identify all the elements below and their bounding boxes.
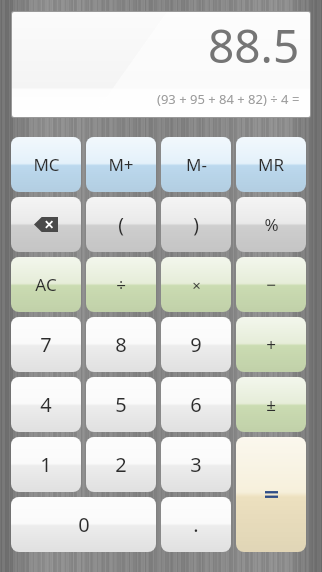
staticText: 7 <box>40 331 52 358</box>
button[interactable]: 7 <box>11 317 81 372</box>
button[interactable]: ÷ <box>86 257 156 312</box>
button[interactable]: 8 <box>86 317 156 372</box>
button[interactable]: M+ <box>86 137 156 192</box>
button[interactable]: MC <box>11 137 81 192</box>
staticText: 2 <box>115 451 127 478</box>
other: Backspace <box>34 217 58 232</box>
button[interactable]: . <box>161 497 231 552</box>
staticText: AC <box>35 273 57 296</box>
staticText: (93 + 95 + 84 + 82) ÷ 4 = <box>157 90 300 108</box>
staticText: 0 <box>78 511 90 538</box>
staticText: 1 <box>40 451 52 478</box>
button[interactable]: 3 <box>161 437 231 492</box>
button[interactable]: AC <box>11 257 81 312</box>
staticText: . <box>193 511 199 538</box>
button[interactable]: ) <box>161 197 231 252</box>
button[interactable]: ( <box>86 197 156 252</box>
staticText: M- <box>186 153 207 176</box>
button[interactable]: 0 <box>11 497 156 552</box>
staticText: M+ <box>108 153 134 176</box>
button[interactable]: ± <box>236 377 306 432</box>
button[interactable]: MR <box>236 137 306 192</box>
staticText: ± <box>266 393 276 416</box>
button[interactable]: M- <box>161 137 231 192</box>
staticText: 5 <box>115 391 127 418</box>
button[interactable]: + <box>236 317 306 372</box>
staticText: 6 <box>190 391 202 418</box>
staticText: − <box>266 273 276 296</box>
staticText: × <box>192 275 201 295</box>
button[interactable]: 9 <box>161 317 231 372</box>
button[interactable]: Equals <box>236 437 306 552</box>
staticText: MC <box>33 153 60 176</box>
button[interactable]: Backspace <box>11 197 81 252</box>
staticText: ( <box>118 212 124 238</box>
button[interactable]: 4 <box>11 377 81 432</box>
other: Equals <box>265 490 278 499</box>
staticText: 88.5 <box>208 14 300 77</box>
staticText: MR <box>258 153 284 176</box>
staticText: 8 <box>115 331 127 358</box>
staticText: ) <box>193 212 199 238</box>
button[interactable]: 5 <box>86 377 156 432</box>
button[interactable]: × <box>161 257 231 312</box>
button[interactable]: 6 <box>161 377 231 432</box>
staticText: % <box>264 213 279 236</box>
staticText: 3 <box>190 451 202 478</box>
staticText: 9 <box>190 331 202 358</box>
staticText: ÷ <box>116 273 126 296</box>
staticText: 4 <box>40 391 52 418</box>
button[interactable]: 1 <box>11 437 81 492</box>
button[interactable]: 2 <box>86 437 156 492</box>
button[interactable]: − <box>236 257 306 312</box>
button[interactable]: % <box>236 197 306 252</box>
staticText: + <box>266 333 276 356</box>
